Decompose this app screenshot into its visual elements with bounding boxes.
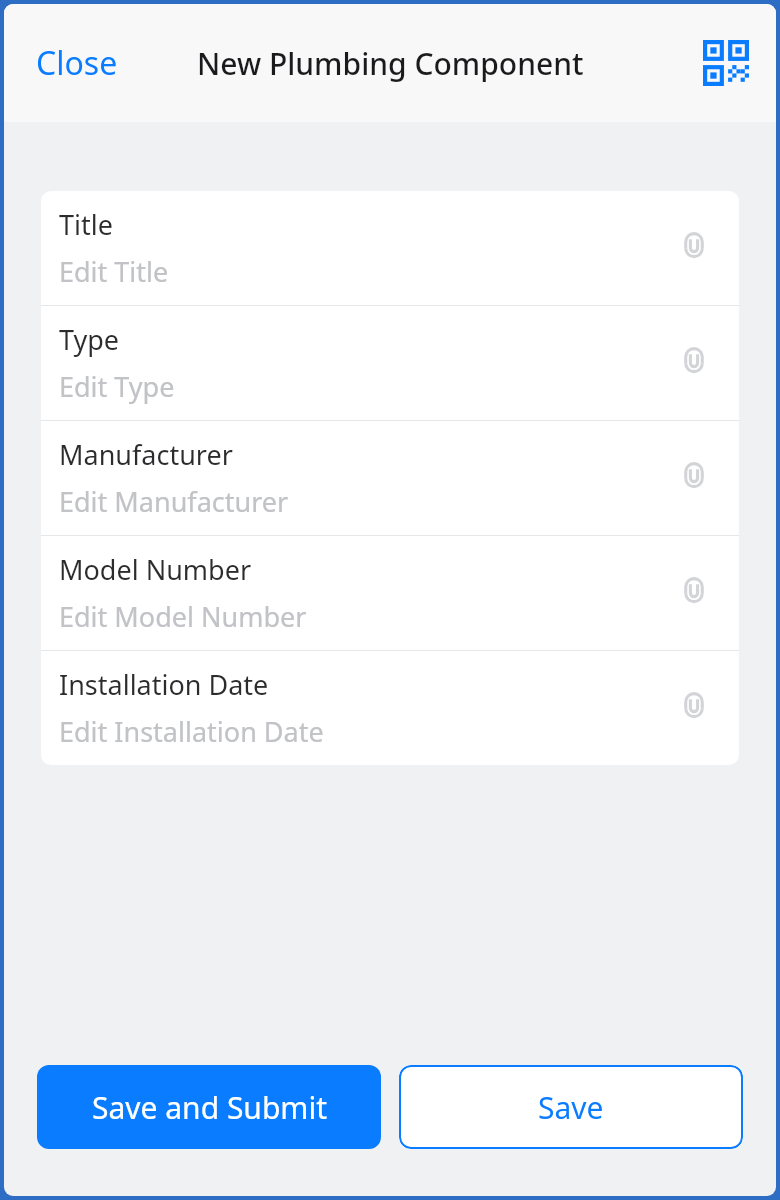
staticText: Manufacturer bbox=[59, 436, 233, 473]
button[interactable]: Attach file to Title bbox=[667, 221, 721, 275]
button[interactable]: Attach file to Model Number bbox=[667, 566, 721, 620]
button[interactable]: Save bbox=[399, 1065, 743, 1149]
staticText: Edit Installation Date bbox=[59, 713, 324, 750]
button[interactable]: Scan QR code bbox=[698, 35, 754, 91]
button[interactable]: Attach file to Type bbox=[667, 336, 721, 390]
button[interactable]: Manufacturer bbox=[41, 421, 739, 535]
staticText: Edit Type bbox=[59, 368, 175, 405]
staticText: Edit Manufacturer bbox=[59, 483, 289, 520]
staticText: Edit Title bbox=[59, 253, 169, 290]
button[interactable]: Attach file to Installation Date bbox=[667, 681, 721, 735]
staticText: Edit Model Number bbox=[59, 598, 307, 635]
staticText: Installation Date bbox=[59, 666, 269, 703]
staticText: New Plumbing Component bbox=[197, 43, 584, 84]
button[interactable]: Save and Submit bbox=[37, 1065, 381, 1149]
button[interactable]: Type bbox=[41, 306, 739, 420]
staticText: Model Number bbox=[59, 551, 252, 588]
staticText: Save bbox=[538, 1087, 604, 1128]
button[interactable]: Close bbox=[22, 33, 132, 93]
staticText: Title bbox=[59, 206, 113, 243]
staticText: Type bbox=[59, 321, 120, 358]
staticText: Close bbox=[36, 41, 118, 85]
button[interactable]: Title bbox=[41, 191, 739, 305]
button[interactable]: Installation Date bbox=[41, 651, 739, 765]
button[interactable]: Model Number bbox=[41, 536, 739, 650]
staticText: Save and Submit bbox=[92, 1087, 327, 1128]
button[interactable]: Attach file to Manufacturer bbox=[667, 451, 721, 505]
